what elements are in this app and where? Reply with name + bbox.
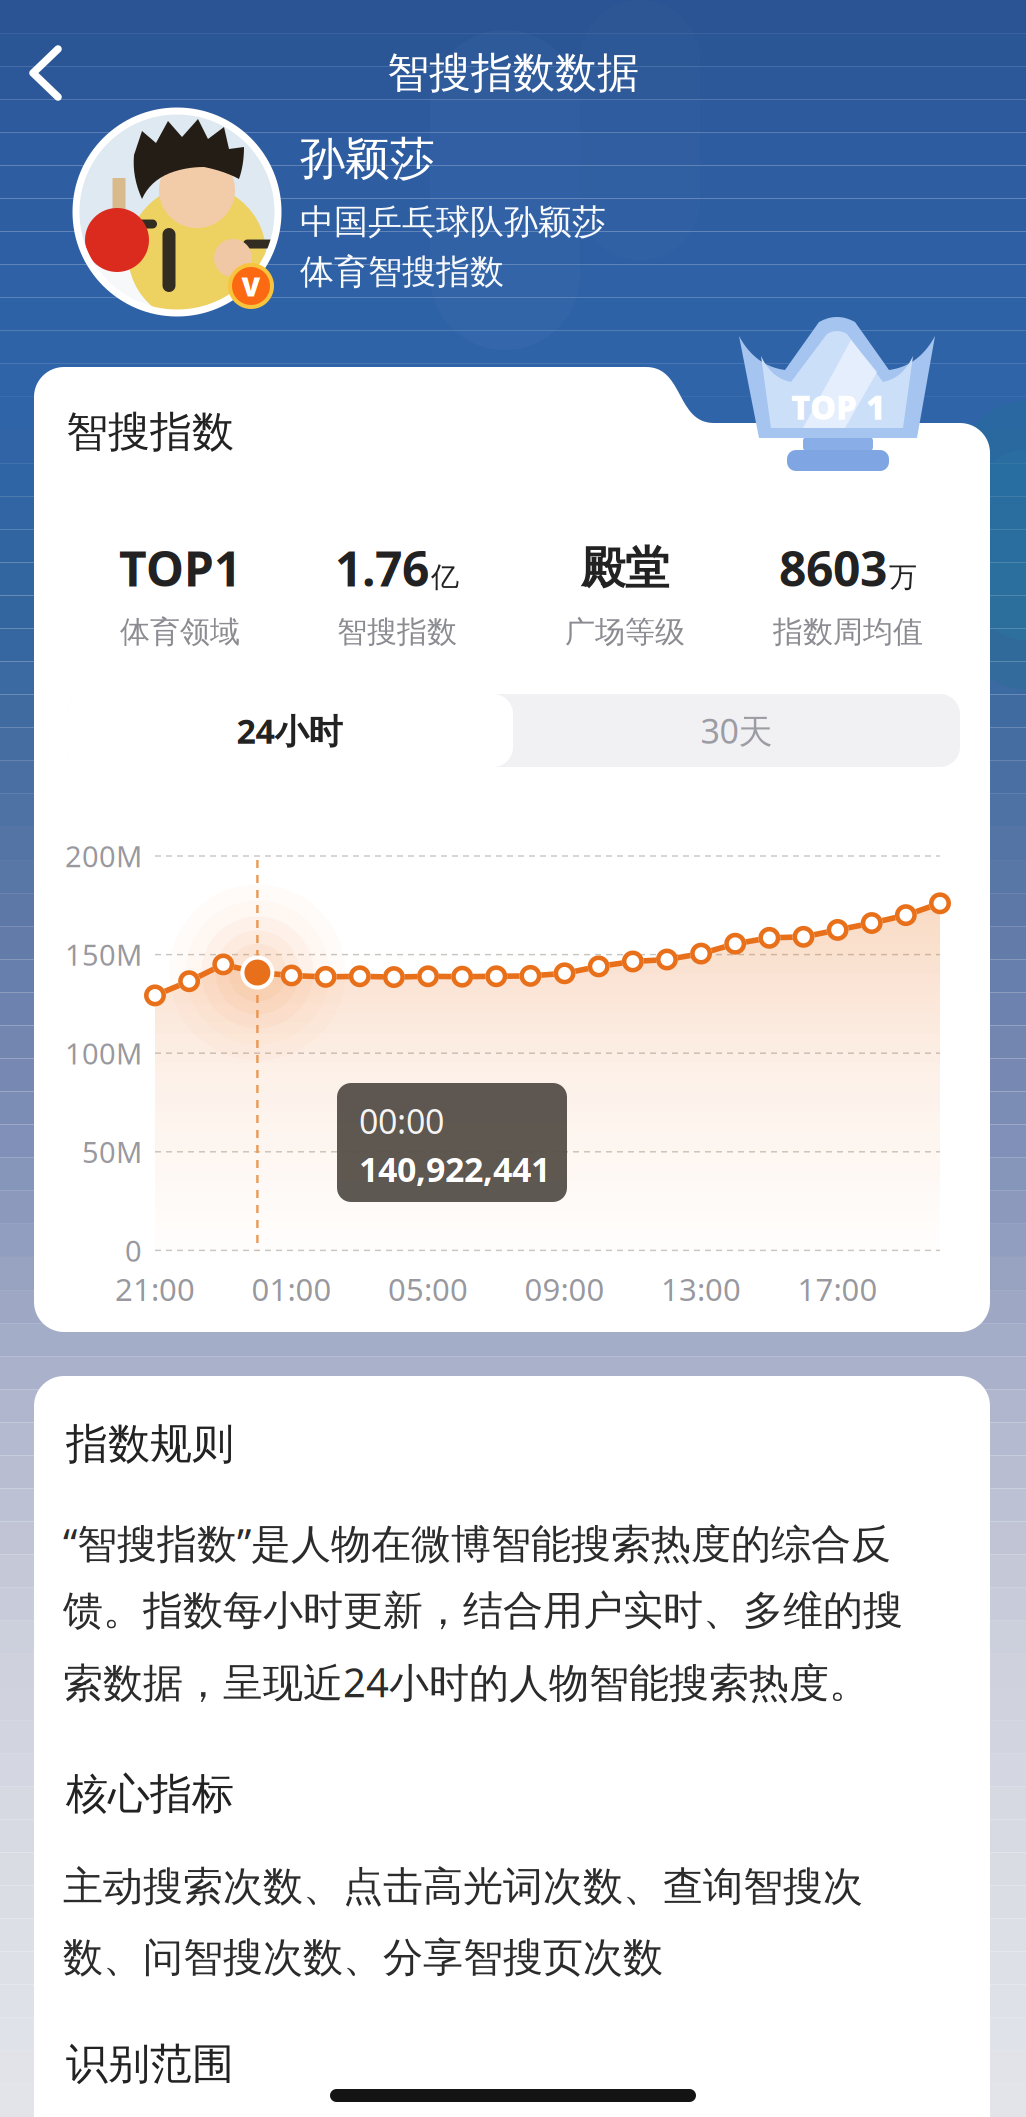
button[interactable]: Back (30, 42, 64, 104)
staticText: 01:00 (251, 1268, 331, 1310)
staticText: TOP 1 (791, 385, 885, 429)
staticText: 中国乒乓球队孙颖莎 (300, 201, 606, 243)
staticText: 1.76 (335, 536, 429, 600)
staticText: “智搜指数”是人物在微博智能搜索热度的综合反 (63, 1516, 891, 1569)
staticText: 智搜指数 (66, 406, 234, 458)
staticText: 体育智搜指数 (300, 251, 504, 293)
staticText: 24小时 (236, 708, 342, 753)
staticText: 0 (125, 1231, 142, 1270)
staticText: 21:00 (115, 1268, 195, 1310)
staticText: V (241, 268, 260, 304)
staticText: 8603 (779, 536, 887, 600)
staticText: 100M (65, 1034, 142, 1072)
staticText: 09:00 (525, 1268, 605, 1310)
staticText: 30天 (700, 708, 772, 753)
staticText: 13:00 (661, 1268, 741, 1310)
staticText: 05:00 (388, 1268, 468, 1310)
staticText: 50M (82, 1132, 142, 1171)
staticText: 主动搜索次数、点击高光词次数、查询智搜次 (63, 1862, 863, 1911)
button[interactable]: 30天 (513, 694, 960, 767)
staticText: 数、问智搜次数、分享智搜页次数 (63, 1933, 663, 1982)
staticText: 150M (65, 935, 142, 974)
staticText: 广场等级 (565, 613, 685, 650)
staticText: 指数规则 (66, 1418, 234, 1470)
staticText: 索数据，呈现近24小时的人物智能搜索热度。 (63, 1655, 869, 1708)
staticText: 140,922,441 (359, 1146, 550, 1191)
button[interactable]: 24小时 (66, 694, 513, 767)
staticText: 智搜指数数据 (387, 47, 639, 99)
staticText: 馈。指数每小时更新，结合用户实时、多维的搜 (63, 1586, 903, 1635)
staticText: 核心指标 (66, 1768, 234, 1820)
staticText: 17:00 (798, 1268, 878, 1310)
staticText: 殿堂 (581, 541, 669, 595)
staticText: 亿 (431, 560, 459, 595)
staticText: 00:00 (359, 1098, 444, 1143)
staticText: 万 (889, 560, 917, 595)
staticText: 智搜指数 (337, 613, 457, 650)
staticText: 200M (65, 837, 142, 875)
staticText: 指数周均值 (773, 613, 923, 650)
staticText: 孙颖莎 (300, 131, 435, 187)
staticText: 体育领域 (120, 613, 240, 650)
staticText: 识别范围 (66, 2038, 234, 2090)
staticText: TOP1 (119, 536, 241, 600)
